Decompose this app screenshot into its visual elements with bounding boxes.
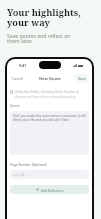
button[interactable]: Save (75, 74, 89, 83)
staticText: Cancel (12, 76, 24, 81)
staticText: chapter on three of your slow-ideas toda… (15, 95, 76, 99)
staticText: Quote (10, 104, 20, 108)
staticText: e.g. 142 (13, 173, 25, 177)
staticText: New Quote (39, 76, 61, 81)
button[interactable]: Until you make the unconscious conscious… (10, 111, 89, 155)
button[interactable]: e.g. 142 (10, 170, 89, 179)
staticText: Until you make the unconscious conscious… (13, 114, 86, 122)
staticText: Reflective Habits, the Essay & the Pract… (15, 90, 79, 94)
staticText: Add Reflection (41, 188, 64, 192)
button[interactable]: Cancel (7, 74, 26, 83)
staticText: Your highlights, your way (7, 6, 81, 29)
staticText: Save (78, 76, 86, 81)
staticText: 9:41 (19, 63, 27, 68)
staticText: Save quotes and reflect on them later. (7, 33, 71, 44)
button[interactable]: Add Reflection (10, 185, 89, 194)
staticText: Page Number (Optional) (10, 163, 48, 167)
